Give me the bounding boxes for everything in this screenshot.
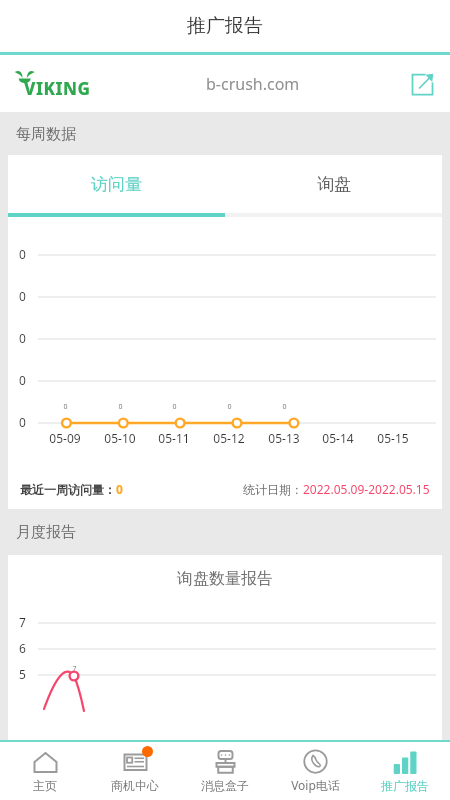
staticText: 消息盒子 xyxy=(201,778,249,793)
button[interactable]: 询盘 xyxy=(225,155,442,213)
staticText: 0 xyxy=(19,288,26,304)
staticText: 05-09 xyxy=(49,430,81,446)
staticText: 询盘数量报告 xyxy=(177,569,273,589)
staticText: 推广报告 xyxy=(381,778,429,793)
button[interactable]: 商机中心 xyxy=(90,742,180,800)
button[interactable]: Open website xyxy=(404,66,440,102)
staticText: 每周数据 xyxy=(16,125,76,144)
staticText: 月度报告 xyxy=(16,523,76,542)
staticText: 05-13 xyxy=(268,430,300,446)
button[interactable]: 消息盒子 xyxy=(180,742,270,800)
staticText: VIKING xyxy=(24,77,91,100)
staticText: 询盘 xyxy=(317,174,351,195)
staticText: 2022.05.09-2022.05.15 xyxy=(303,481,430,497)
button[interactable]: 访问量 xyxy=(8,155,225,213)
staticText: 05-15 xyxy=(377,430,409,446)
staticText: 0 xyxy=(118,402,123,412)
staticText: 05-10 xyxy=(104,430,136,446)
staticText: 0 xyxy=(19,372,26,388)
staticText: 0 xyxy=(19,246,26,262)
staticText: 最近一周访问量： xyxy=(20,482,116,497)
staticText: 主页 xyxy=(33,778,57,793)
staticText: 0 xyxy=(227,402,232,412)
button[interactable]: 主页 xyxy=(0,742,90,800)
staticText: 0 xyxy=(19,330,26,346)
button[interactable]: Voip电话 xyxy=(270,742,360,800)
staticText: 商机中心 xyxy=(111,778,159,793)
staticText: 推广报告 xyxy=(187,14,263,38)
staticText: 05-11 xyxy=(158,430,190,446)
staticText: 7 xyxy=(72,664,77,674)
staticText: Voip电话 xyxy=(291,777,340,793)
staticText: 0 xyxy=(19,414,26,430)
staticText: 6 xyxy=(19,640,26,656)
staticText: 0 xyxy=(282,402,287,412)
staticText: 统计日期： xyxy=(243,482,303,497)
staticText: 0 xyxy=(63,402,68,412)
button[interactable]: 推广报告 xyxy=(360,742,450,800)
staticText: 0 xyxy=(172,402,177,412)
staticText: 05-12 xyxy=(213,430,245,446)
staticText: b-crush.com xyxy=(206,73,300,95)
staticText: 5 xyxy=(19,666,26,682)
staticText: 05-14 xyxy=(322,430,354,446)
staticText: 0 xyxy=(116,481,123,497)
staticText: 7 xyxy=(19,614,26,630)
staticText: 访问量 xyxy=(91,174,142,195)
